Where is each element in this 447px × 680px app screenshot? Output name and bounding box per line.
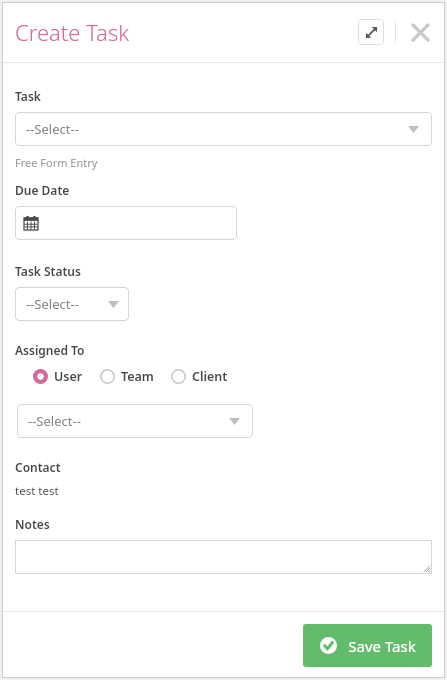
staticText: Task Status (15, 263, 81, 279)
staticText: User (54, 368, 83, 385)
staticText: Client (192, 368, 228, 385)
button[interactable]: Close (407, 19, 433, 45)
button[interactable]: Pick date (15, 206, 237, 240)
staticText: test test (15, 483, 59, 499)
button[interactable]: --Select-- (15, 287, 129, 321)
staticText: Save Task (348, 636, 416, 656)
staticText: Contact (15, 459, 61, 475)
other: Pick date (24, 216, 38, 230)
staticText: Team (121, 368, 154, 385)
staticText: Task (15, 88, 41, 104)
button[interactable]: --Select-- (15, 112, 432, 146)
button[interactable] (15, 540, 432, 574)
staticText: Due Date (15, 182, 70, 198)
button[interactable]: Client (171, 368, 228, 385)
button[interactable]: Expand (358, 19, 384, 45)
staticText: Create Task (15, 17, 130, 47)
staticText: --Select-- (26, 120, 79, 138)
button[interactable]: Team (100, 368, 154, 385)
staticText: --Select-- (26, 295, 79, 313)
staticText: Assigned To (15, 342, 85, 358)
staticText: Notes (15, 516, 50, 532)
staticText: --Select-- (28, 412, 81, 430)
button[interactable]: --Select-- (17, 404, 253, 438)
button[interactable]: User (33, 368, 83, 385)
button[interactable]: Save Task (303, 624, 432, 667)
staticText: Free Form Entry (15, 155, 98, 170)
